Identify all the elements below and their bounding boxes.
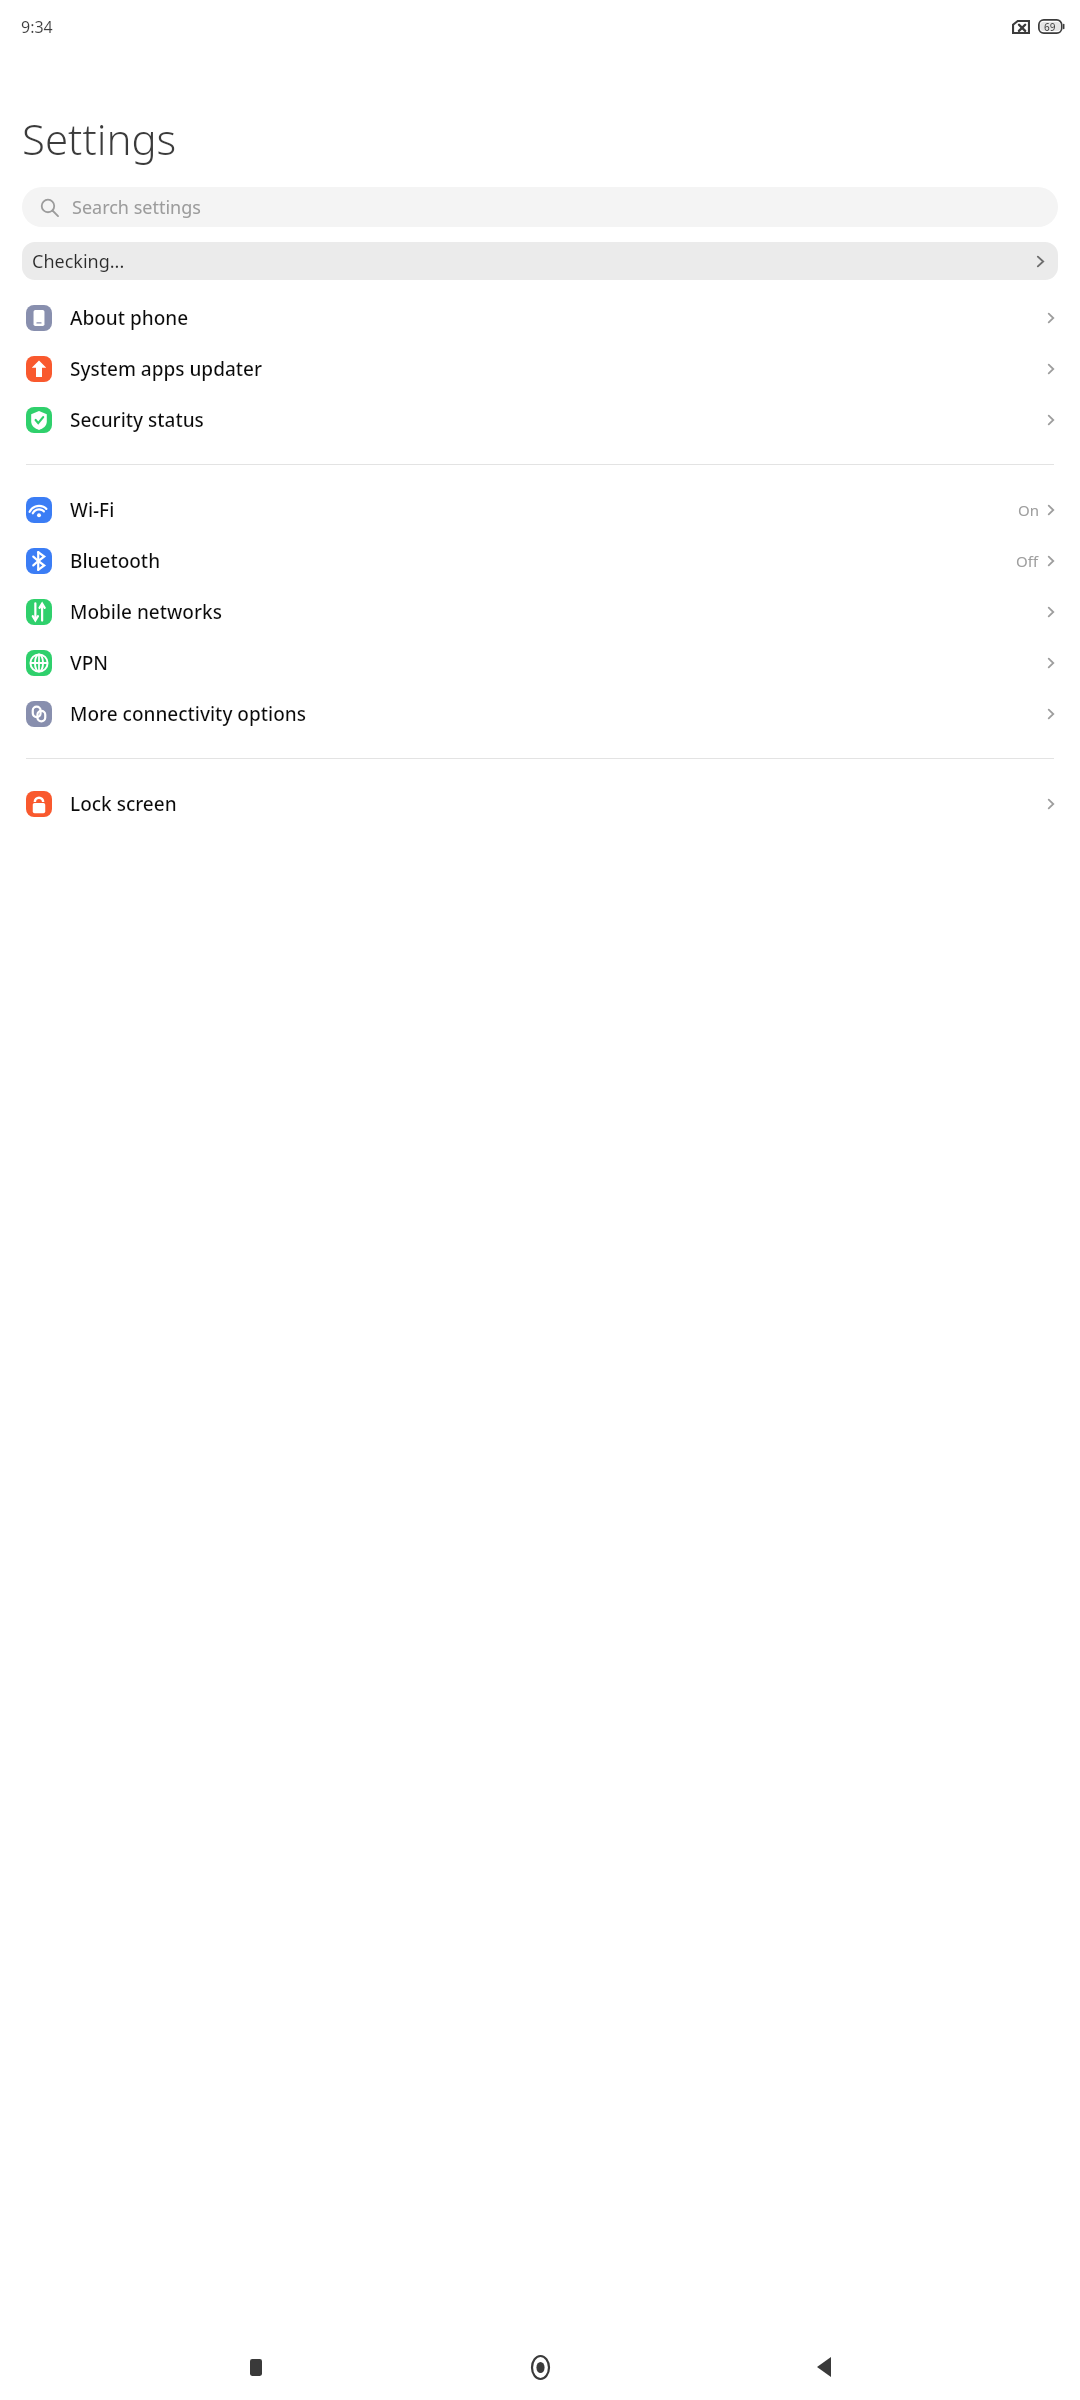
staticText: On [1018, 500, 1039, 520]
staticText: VPN [70, 650, 109, 676]
staticText: Search settings [72, 195, 201, 220]
staticText: Wi-Fi [70, 497, 115, 523]
button[interactable]: Home [512, 2339, 568, 2395]
button[interactable]: System apps updater [0, 343, 1080, 394]
button[interactable]: Bluetooth [0, 535, 1080, 586]
button[interactable]: About phone [0, 292, 1080, 343]
staticText: About phone [70, 305, 189, 331]
staticText: Security status [70, 407, 204, 433]
staticText: Settings [22, 110, 177, 167]
staticText: 69 [1044, 20, 1056, 34]
button[interactable]: Mobile networks [0, 586, 1080, 637]
staticText: 9:34 [21, 16, 53, 38]
button[interactable]: Back [796, 2339, 852, 2395]
staticText: Mobile networks [70, 599, 222, 625]
staticText: Off [1016, 551, 1039, 571]
button[interactable]: Search settings [22, 187, 1058, 227]
staticText: Checking... [32, 249, 125, 274]
button[interactable]: VPN [0, 637, 1080, 688]
button[interactable]: Security status [0, 394, 1080, 445]
button[interactable]: Lock screen [0, 778, 1080, 829]
button[interactable]: Wi-Fi [0, 484, 1080, 535]
button[interactable]: Recents [228, 2339, 284, 2395]
staticText: Bluetooth [70, 548, 161, 574]
button[interactable]: More connectivity options [0, 688, 1080, 739]
button[interactable]: Checking... [22, 242, 1058, 280]
staticText: System apps updater [70, 356, 262, 382]
staticText: More connectivity options [70, 701, 306, 727]
staticText: Lock screen [70, 791, 177, 817]
